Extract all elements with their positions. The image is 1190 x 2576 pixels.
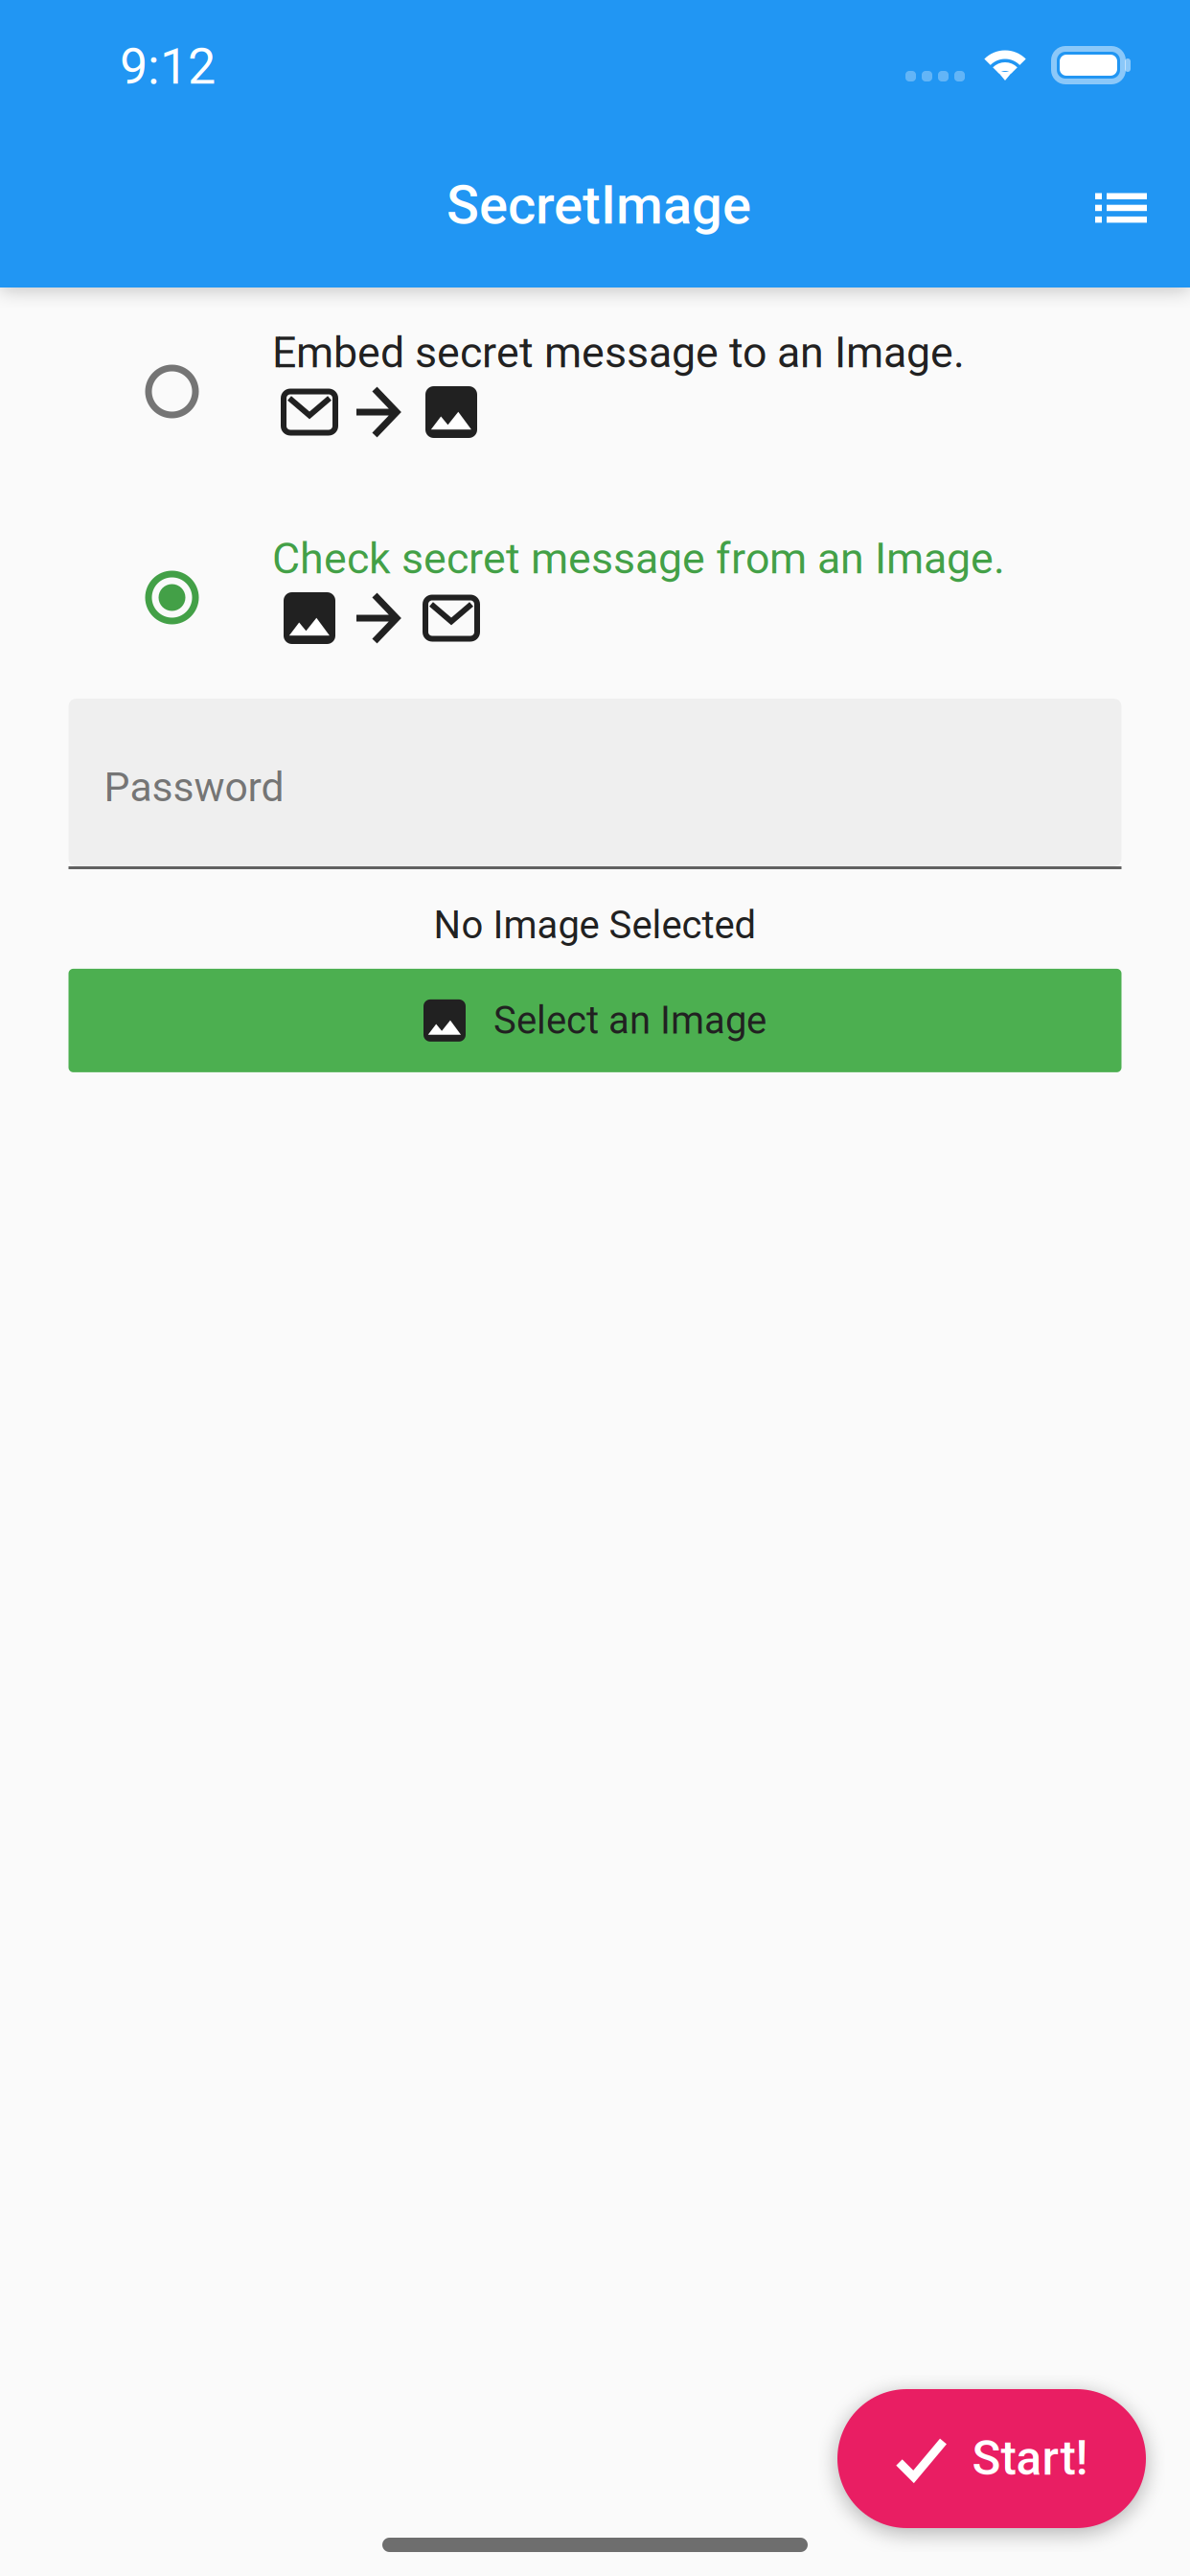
staticText: Check secret message from an Image. <box>272 534 1005 584</box>
button[interactable]: Start! <box>837 2389 1146 2528</box>
staticText: 9:12 <box>120 37 216 96</box>
staticText: SecretImage <box>446 174 751 237</box>
button[interactable]: Select an Image <box>69 969 1121 1072</box>
staticText: Password <box>104 763 284 811</box>
staticText: Embed secret message to an Image. <box>272 328 965 378</box>
button[interactable]: Embed secret message to an Image. <box>0 328 1190 442</box>
staticText: Select an Image <box>493 998 767 1043</box>
staticText: No Image Selected <box>434 903 756 948</box>
button[interactable]: Menu <box>1095 193 1147 223</box>
button[interactable]: Check secret message from an Image. <box>0 534 1190 648</box>
staticText: Start! <box>972 2431 1088 2486</box>
